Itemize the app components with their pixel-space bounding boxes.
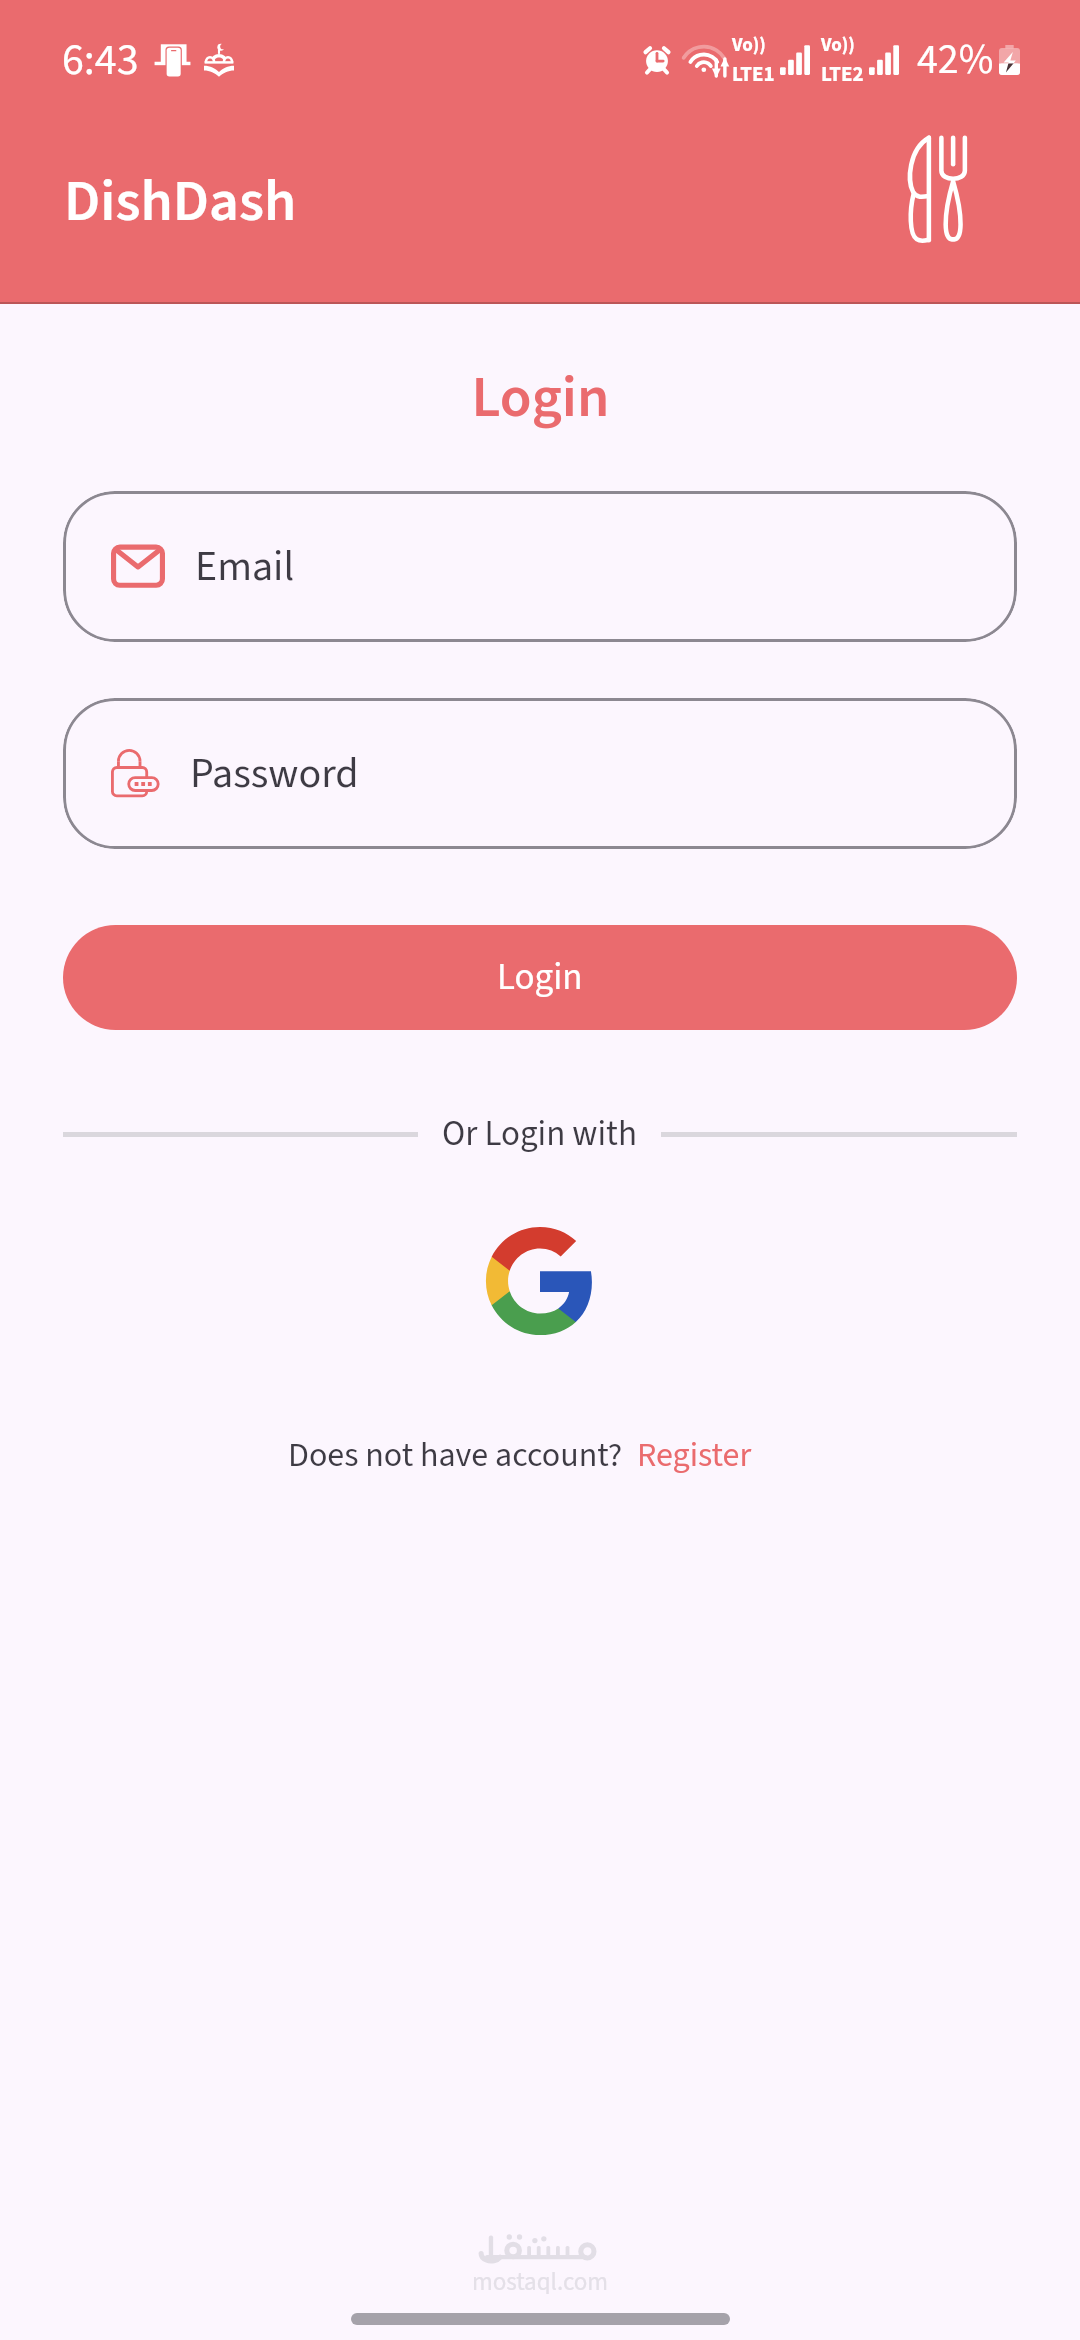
staticText: Or Login with [442,1109,637,1159]
staticText: Register [637,1431,752,1479]
staticText: Vo)) [821,32,855,59]
staticText: 6:43 [62,29,139,92]
button[interactable]: Sign in with Google [470,1211,610,1351]
staticText: 42% [917,30,994,90]
button[interactable]: Register [637,1431,752,1479]
staticText: Vo)) [732,32,766,59]
staticText: LTE1 [732,59,775,89]
staticText: Login [471,357,610,431]
staticText: mostaql.com [472,2264,609,2294]
staticText: DishDash [64,161,297,244]
button[interactable]: Login [63,925,1017,1030]
button[interactable]: Email [63,491,1017,642]
button[interactable]: Restaurant menu [876,106,996,272]
staticText: Does not have account? [288,1431,623,1479]
button[interactable]: Password [63,698,1017,849]
staticText: Password [190,744,359,804]
staticText: Login [497,951,583,1004]
staticText: LTE2 [821,59,864,89]
staticText: Email [195,537,295,597]
